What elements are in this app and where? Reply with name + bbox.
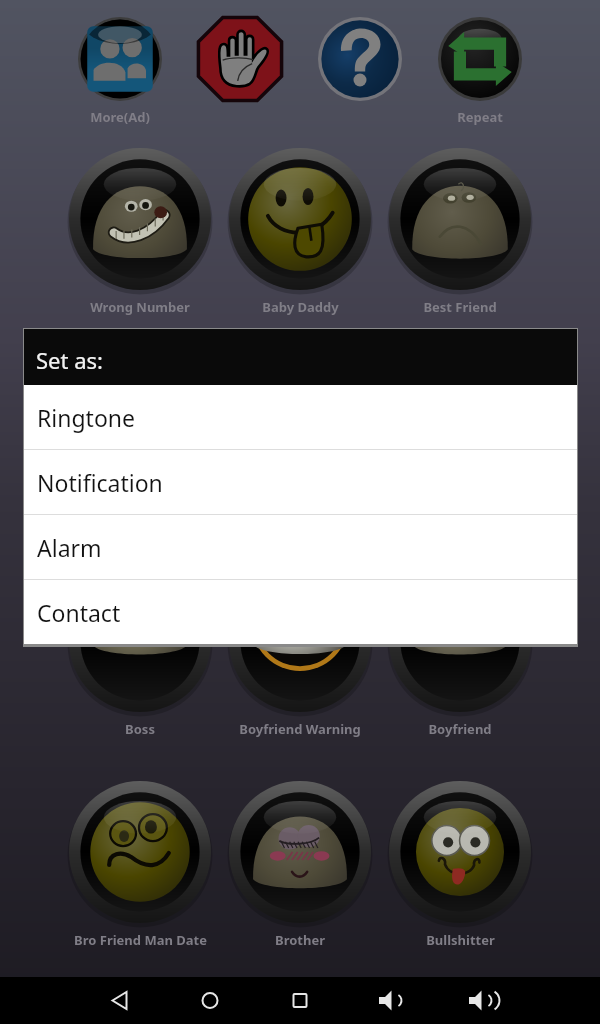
staticText: Bro Friend Man Date	[74, 931, 207, 949]
staticText: Repeat	[457, 108, 503, 126]
button[interactable]: Best Friend	[380, 297, 540, 317]
staticText: Contact	[37, 597, 121, 628]
staticText: Boyfriend	[428, 720, 492, 738]
button[interactable]: Baby Daddy	[220, 297, 380, 317]
button[interactable]: Volume up	[456, 977, 504, 1024]
staticText: Boss	[125, 720, 155, 738]
staticText: Baby Daddy	[262, 298, 339, 316]
staticText: Notification	[37, 467, 163, 498]
button[interactable]: Brother	[220, 930, 380, 950]
button[interactable]: More(Ad)	[60, 107, 180, 127]
button[interactable]: Notification	[24, 450, 577, 514]
staticText: Ringtone	[37, 402, 136, 433]
button[interactable]: Bro Friend Man Date	[60, 930, 220, 950]
button[interactable]: Wrong Number	[60, 297, 220, 317]
staticText: More(Ad)	[90, 108, 150, 126]
staticText: Best Friend	[423, 298, 497, 316]
button[interactable]: Ringtone	[24, 385, 577, 449]
button[interactable]: Volume down	[366, 977, 414, 1024]
button[interactable]: Recent apps	[276, 977, 324, 1024]
staticText: Alarm	[37, 532, 102, 563]
staticText: Brother	[275, 931, 325, 949]
staticText: Bullshitter	[426, 931, 495, 949]
button[interactable]: Back	[96, 977, 144, 1024]
button[interactable]: Boss	[60, 719, 220, 739]
button[interactable]: Contact	[24, 580, 577, 644]
button[interactable]: Boyfriend	[380, 719, 540, 739]
button[interactable]: Home	[186, 977, 234, 1024]
button[interactable]: Repeat	[420, 107, 540, 127]
staticText: Boyfriend Warning	[239, 720, 361, 738]
button[interactable]: Boyfriend Warning	[220, 719, 380, 739]
button[interactable]: Alarm	[24, 515, 577, 579]
staticText: Set as:	[36, 345, 103, 375]
staticText: Wrong Number	[90, 298, 190, 316]
button[interactable]: Bullshitter	[380, 930, 540, 950]
